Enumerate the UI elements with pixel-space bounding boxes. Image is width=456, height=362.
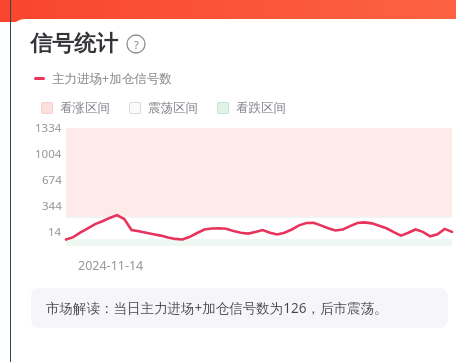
staticText: 2024-11-14 xyxy=(78,257,144,274)
button[interactable]: 市场解读：当日主力进场+加仓信号数为126，后市震荡。 xyxy=(31,288,448,328)
staticText: 看涨区间 xyxy=(60,100,110,116)
button[interactable]: 信号统计 xyxy=(30,30,146,58)
button[interactable]: 看涨区间 xyxy=(41,100,110,116)
staticText: 信号统计 xyxy=(30,30,118,58)
button[interactable]: 震荡区间 xyxy=(129,100,198,116)
staticText: 1004 xyxy=(35,146,62,162)
staticText: 14 xyxy=(48,224,62,240)
staticText: 主力进场+加仓信号数 xyxy=(52,70,172,87)
staticText: 344 xyxy=(42,198,62,214)
staticText: 674 xyxy=(42,172,62,188)
staticText: ? xyxy=(134,37,139,52)
button[interactable]: 看跌区间 xyxy=(217,100,286,116)
staticText: 1334 xyxy=(35,120,62,136)
button[interactable]: 主力进场+加仓信号数 xyxy=(34,70,172,87)
button[interactable]: Help xyxy=(126,34,146,54)
staticText: 震荡区间 xyxy=(148,100,198,116)
staticText: 市场解读：当日主力进场+加仓信号数为126，后市震荡。 xyxy=(46,299,388,317)
staticText: 看跌区间 xyxy=(236,100,286,116)
